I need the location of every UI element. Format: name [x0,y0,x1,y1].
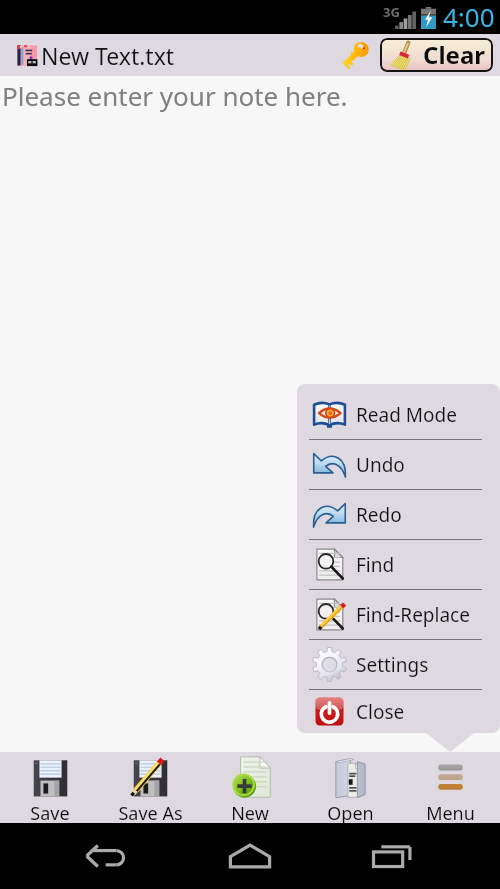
staticText: Menu [426,801,475,823]
button[interactable]: Find [297,540,500,590]
staticText: Read Mode [356,402,457,428]
staticText: Save [30,801,70,823]
button[interactable]: License key [336,36,374,74]
button[interactable]: Home [217,823,283,889]
button[interactable]: Find-Replace [297,590,500,640]
button[interactable]: Settings [297,640,500,690]
button[interactable]: Save As [100,752,200,823]
staticText: Open [327,801,374,823]
staticText: Find-Replace [356,602,470,628]
staticText: New Text.txt [41,40,175,71]
staticText: Settings [356,652,429,678]
staticText: 3G [383,3,400,21]
staticText: New [231,801,269,823]
staticText: Save As [118,801,183,823]
button[interactable]: Close [297,690,500,733]
button[interactable]: Back [76,823,142,889]
staticText: Please enter your note here. [2,78,348,113]
button[interactable]: Menu [400,752,500,823]
staticText: Clear [423,38,485,71]
button[interactable]: Undo [297,440,500,490]
button[interactable]: Clear [380,38,493,72]
staticText: Redo [356,502,402,528]
button[interactable]: Redo [297,490,500,540]
button[interactable]: Open [300,752,400,823]
staticText: Find [356,552,395,578]
button[interactable]: Recent apps [359,823,425,889]
button[interactable]: Save [0,752,100,823]
staticText: Undo [356,452,405,478]
button[interactable]: New [200,752,300,823]
staticText: Close [356,699,405,725]
button[interactable]: Read Mode [297,390,500,440]
staticText: 4:00 [443,0,495,33]
